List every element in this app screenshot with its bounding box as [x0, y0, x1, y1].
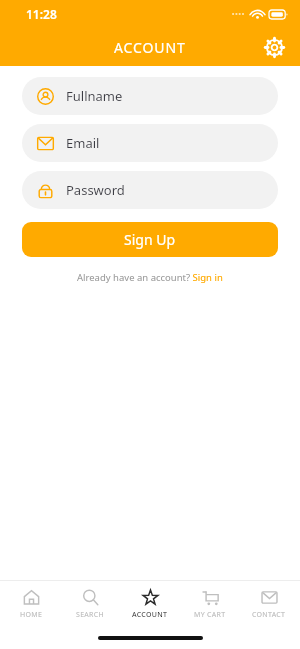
staticText: Sign Up [124, 230, 176, 249]
button[interactable]: Password [22, 171, 278, 209]
button[interactable]: Email [22, 124, 278, 162]
button[interactable]: HOME [2, 581, 60, 627]
button[interactable]: ACCOUNT [121, 581, 179, 627]
staticText: Password [66, 181, 125, 199]
staticText: ACCOUNT [132, 610, 168, 620]
staticText: MY CART [194, 610, 226, 620]
button[interactable]: MY CART [181, 581, 239, 627]
button[interactable]: SEARCH [61, 581, 119, 627]
button[interactable]: Sign Up [22, 222, 278, 257]
staticText: Already have an account? Sign in [77, 271, 223, 284]
button[interactable]: Fullname [22, 77, 278, 115]
staticText: 11:28 [26, 6, 57, 22]
staticText: ACCOUNT [114, 38, 186, 57]
staticText: Fullname [66, 87, 123, 105]
staticText: HOME [20, 610, 43, 620]
staticText: SEARCH [76, 610, 104, 620]
staticText: Email [66, 134, 100, 152]
button[interactable]: Already have an account? Sign in [71, 269, 229, 286]
button[interactable]: CONTACT [240, 581, 298, 627]
staticText: CONTACT [252, 610, 286, 620]
button[interactable]: Settings [258, 31, 290, 63]
